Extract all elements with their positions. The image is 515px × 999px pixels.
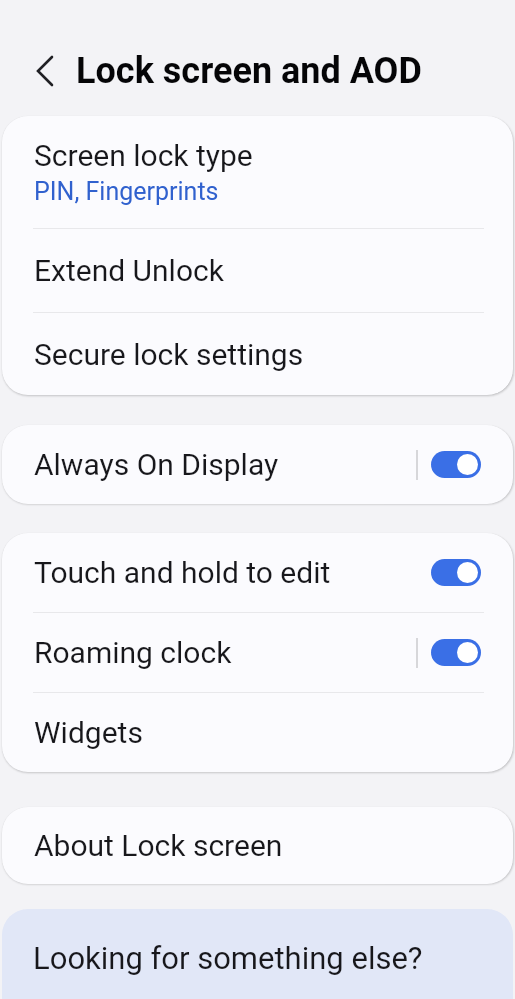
button[interactable]: Roaming clock <box>2 613 513 692</box>
button[interactable]: Always On Display <box>2 425 513 504</box>
button[interactable]: Touch and hold to edit <box>2 533 513 612</box>
staticText: PIN, Fingerprints <box>34 177 219 206</box>
staticText: Lock screen and AOD <box>76 50 422 92</box>
staticText: Roaming clock <box>34 635 232 670</box>
button[interactable]: Looking for something else? <box>2 909 513 999</box>
staticText: Secure lock settings <box>34 337 304 372</box>
button[interactable] <box>25 51 65 91</box>
staticText: Touch and hold to edit <box>34 555 331 590</box>
staticText: Screen lock type <box>34 138 253 173</box>
button[interactable] <box>431 451 481 478</box>
button[interactable]: Widgets <box>2 693 513 772</box>
button[interactable]: About Lock screen <box>2 807 513 884</box>
staticText: About Lock screen <box>34 828 283 863</box>
button[interactable] <box>431 639 481 666</box>
staticText: Looking for something else? <box>33 940 423 976</box>
button[interactable] <box>431 559 481 586</box>
staticText: Always On Display <box>34 447 279 482</box>
staticText: Extend Unlock <box>34 253 224 288</box>
staticText: Widgets <box>34 715 143 750</box>
button[interactable]: Extend Unlock <box>2 229 513 312</box>
button[interactable]: Screen lock type <box>2 116 513 228</box>
button[interactable]: Secure lock settings <box>2 313 513 395</box>
